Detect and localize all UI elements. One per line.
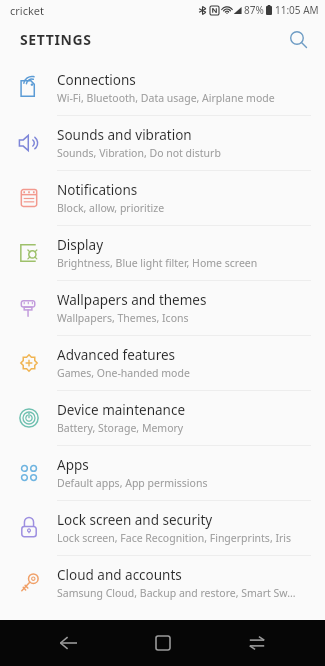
staticText: 11:05 AM — [275, 3, 319, 17]
staticText: Display — [57, 236, 104, 254]
staticText: Sounds and vibration — [57, 126, 192, 144]
staticText: Battery, Storage, Memory — [57, 421, 184, 435]
staticText: Lock screen, Face Recognition, Fingerpri… — [57, 531, 292, 545]
staticText: Wi-Fi, Bluetooth, Data usage, Airplane m… — [57, 91, 275, 105]
button[interactable]: Advanced features — [0, 336, 325, 391]
staticText: 87% — [244, 3, 264, 17]
staticText: cricket — [10, 3, 44, 18]
button[interactable]: Home — [136, 620, 190, 666]
button[interactable]: Connections — [0, 61, 325, 116]
button[interactable]: Back — [41, 620, 95, 666]
button[interactable]: Sounds and vibration — [0, 116, 325, 171]
staticText: Lock screen and security — [57, 511, 213, 529]
staticText: Block, allow, prioritize — [57, 201, 165, 215]
staticText: Brightness, Blue light filter, Home scre… — [57, 256, 258, 270]
staticText: Advanced features — [57, 346, 176, 364]
button[interactable]: Recent apps — [230, 620, 284, 666]
staticText: Wallpapers and themes — [57, 291, 207, 309]
button[interactable]: Wallpapers and themes — [0, 281, 325, 336]
staticText: Device maintenance — [57, 401, 186, 419]
staticText: Apps — [57, 456, 89, 474]
button[interactable]: Search — [281, 22, 315, 56]
staticText: Sounds, Vibration, Do not disturb — [57, 146, 221, 160]
staticText: Cloud and accounts — [57, 566, 182, 584]
staticText: Samsung Cloud, Backup and restore, Smart… — [57, 586, 296, 600]
staticText: Games, One-handed mode — [57, 366, 190, 380]
staticText: Connections — [57, 71, 136, 89]
button[interactable]: Lock screen and security — [0, 501, 325, 556]
button[interactable]: Display — [0, 226, 325, 281]
staticText: SETTINGS — [20, 30, 92, 49]
staticText: Notifications — [57, 181, 138, 199]
staticText: Wallpapers, Themes, Icons — [57, 311, 189, 325]
button[interactable]: Device maintenance — [0, 391, 325, 446]
staticText: Default apps, App permissions — [57, 476, 208, 490]
button[interactable]: Apps — [0, 446, 325, 501]
button[interactable]: Cloud and accounts — [0, 556, 325, 611]
button[interactable]: Notifications — [0, 171, 325, 226]
